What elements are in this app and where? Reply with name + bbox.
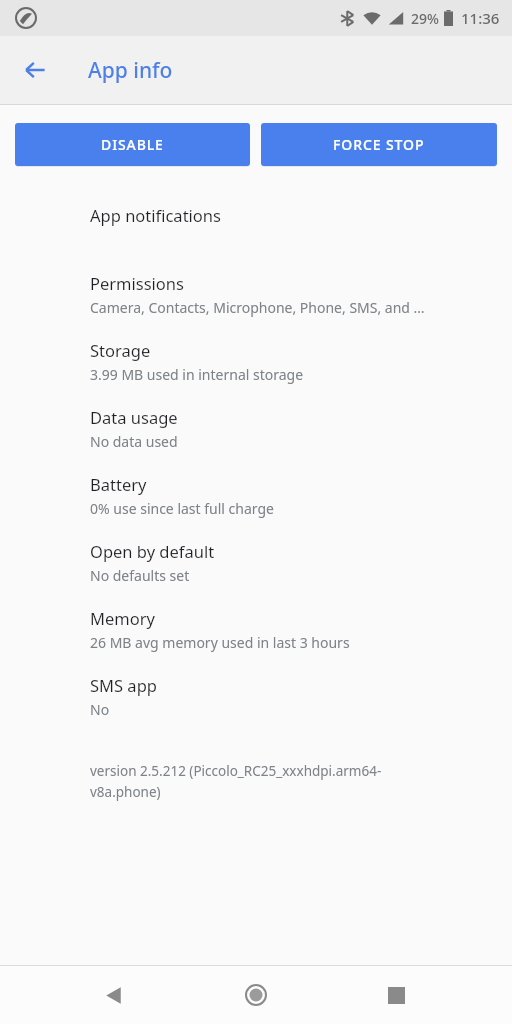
staticText: No — [90, 700, 110, 719]
staticText: App info — [88, 56, 173, 85]
staticText: No defaults set — [90, 566, 190, 585]
staticText: SMS app — [90, 674, 157, 696]
staticText: Battery — [90, 473, 147, 495]
button[interactable]: Data usage — [0, 395, 512, 462]
staticText: Open by default — [90, 540, 215, 562]
staticText: No data used — [90, 432, 178, 451]
staticText: Permissions — [90, 272, 184, 294]
staticText: 29% — [411, 9, 439, 28]
staticText: Data usage — [90, 406, 178, 428]
button[interactable]: FORCE STOP — [261, 123, 497, 166]
button[interactable]: Recent apps — [372, 971, 420, 1019]
button[interactable]: Back — [89, 971, 137, 1019]
button[interactable]: Permissions — [0, 261, 512, 328]
button[interactable]: Battery — [0, 462, 512, 529]
button[interactable]: Open by default — [0, 529, 512, 596]
staticText: FORCE STOP — [333, 135, 425, 154]
staticText: Storage — [90, 339, 151, 361]
staticText: Memory — [90, 607, 155, 629]
button[interactable]: DISABLE — [15, 123, 250, 166]
staticText: 11:36 — [461, 8, 500, 28]
staticText: version 2.5.212 (Piccolo_RC25_xxxhdpi.ar… — [90, 762, 382, 801]
button[interactable]: Storage — [0, 328, 512, 395]
button[interactable]: Memory — [0, 596, 512, 663]
staticText: 26 MB avg memory used in last 3 hours — [90, 633, 350, 652]
button[interactable]: App notifications — [0, 193, 512, 261]
button[interactable]: Back — [11, 46, 59, 94]
staticText: 0% use since last full charge — [90, 499, 274, 518]
staticText: DISABLE — [101, 135, 164, 154]
staticText: Camera, Contacts, Microphone, Phone, SMS… — [90, 298, 425, 317]
staticText: 3.99 MB used in internal storage — [90, 365, 304, 384]
staticText: App notifications — [90, 204, 221, 226]
button[interactable]: SMS app — [0, 663, 512, 730]
button[interactable]: Home — [232, 971, 280, 1019]
